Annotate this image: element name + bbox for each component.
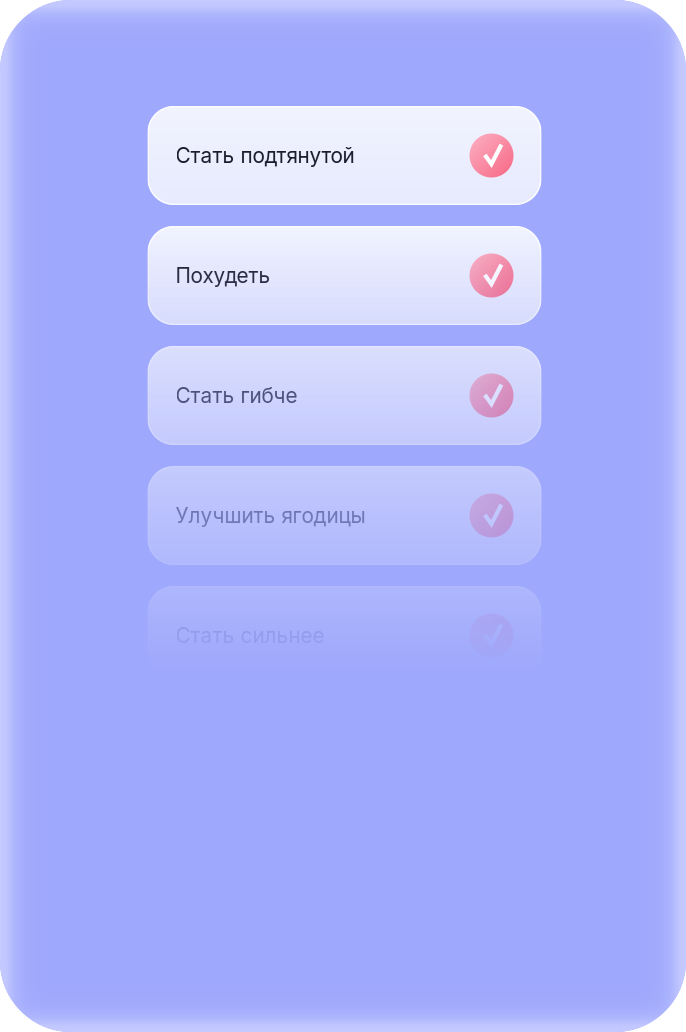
button[interactable]: Стать сильнее bbox=[147, 586, 541, 685]
button[interactable]: Улучшить ягодицы bbox=[147, 466, 541, 565]
button[interactable]: Похудеть bbox=[147, 226, 541, 325]
staticText: Улучшить ягодицы bbox=[175, 503, 365, 528]
button[interactable]: Стать подтянутой bbox=[147, 106, 541, 205]
staticText: Стать гибче bbox=[175, 383, 297, 408]
staticText: Стать сильнее bbox=[175, 623, 324, 648]
staticText: Похудеть bbox=[175, 263, 270, 288]
staticText: Стать подтянутой bbox=[175, 143, 354, 168]
button[interactable]: Стать гибче bbox=[147, 346, 541, 445]
